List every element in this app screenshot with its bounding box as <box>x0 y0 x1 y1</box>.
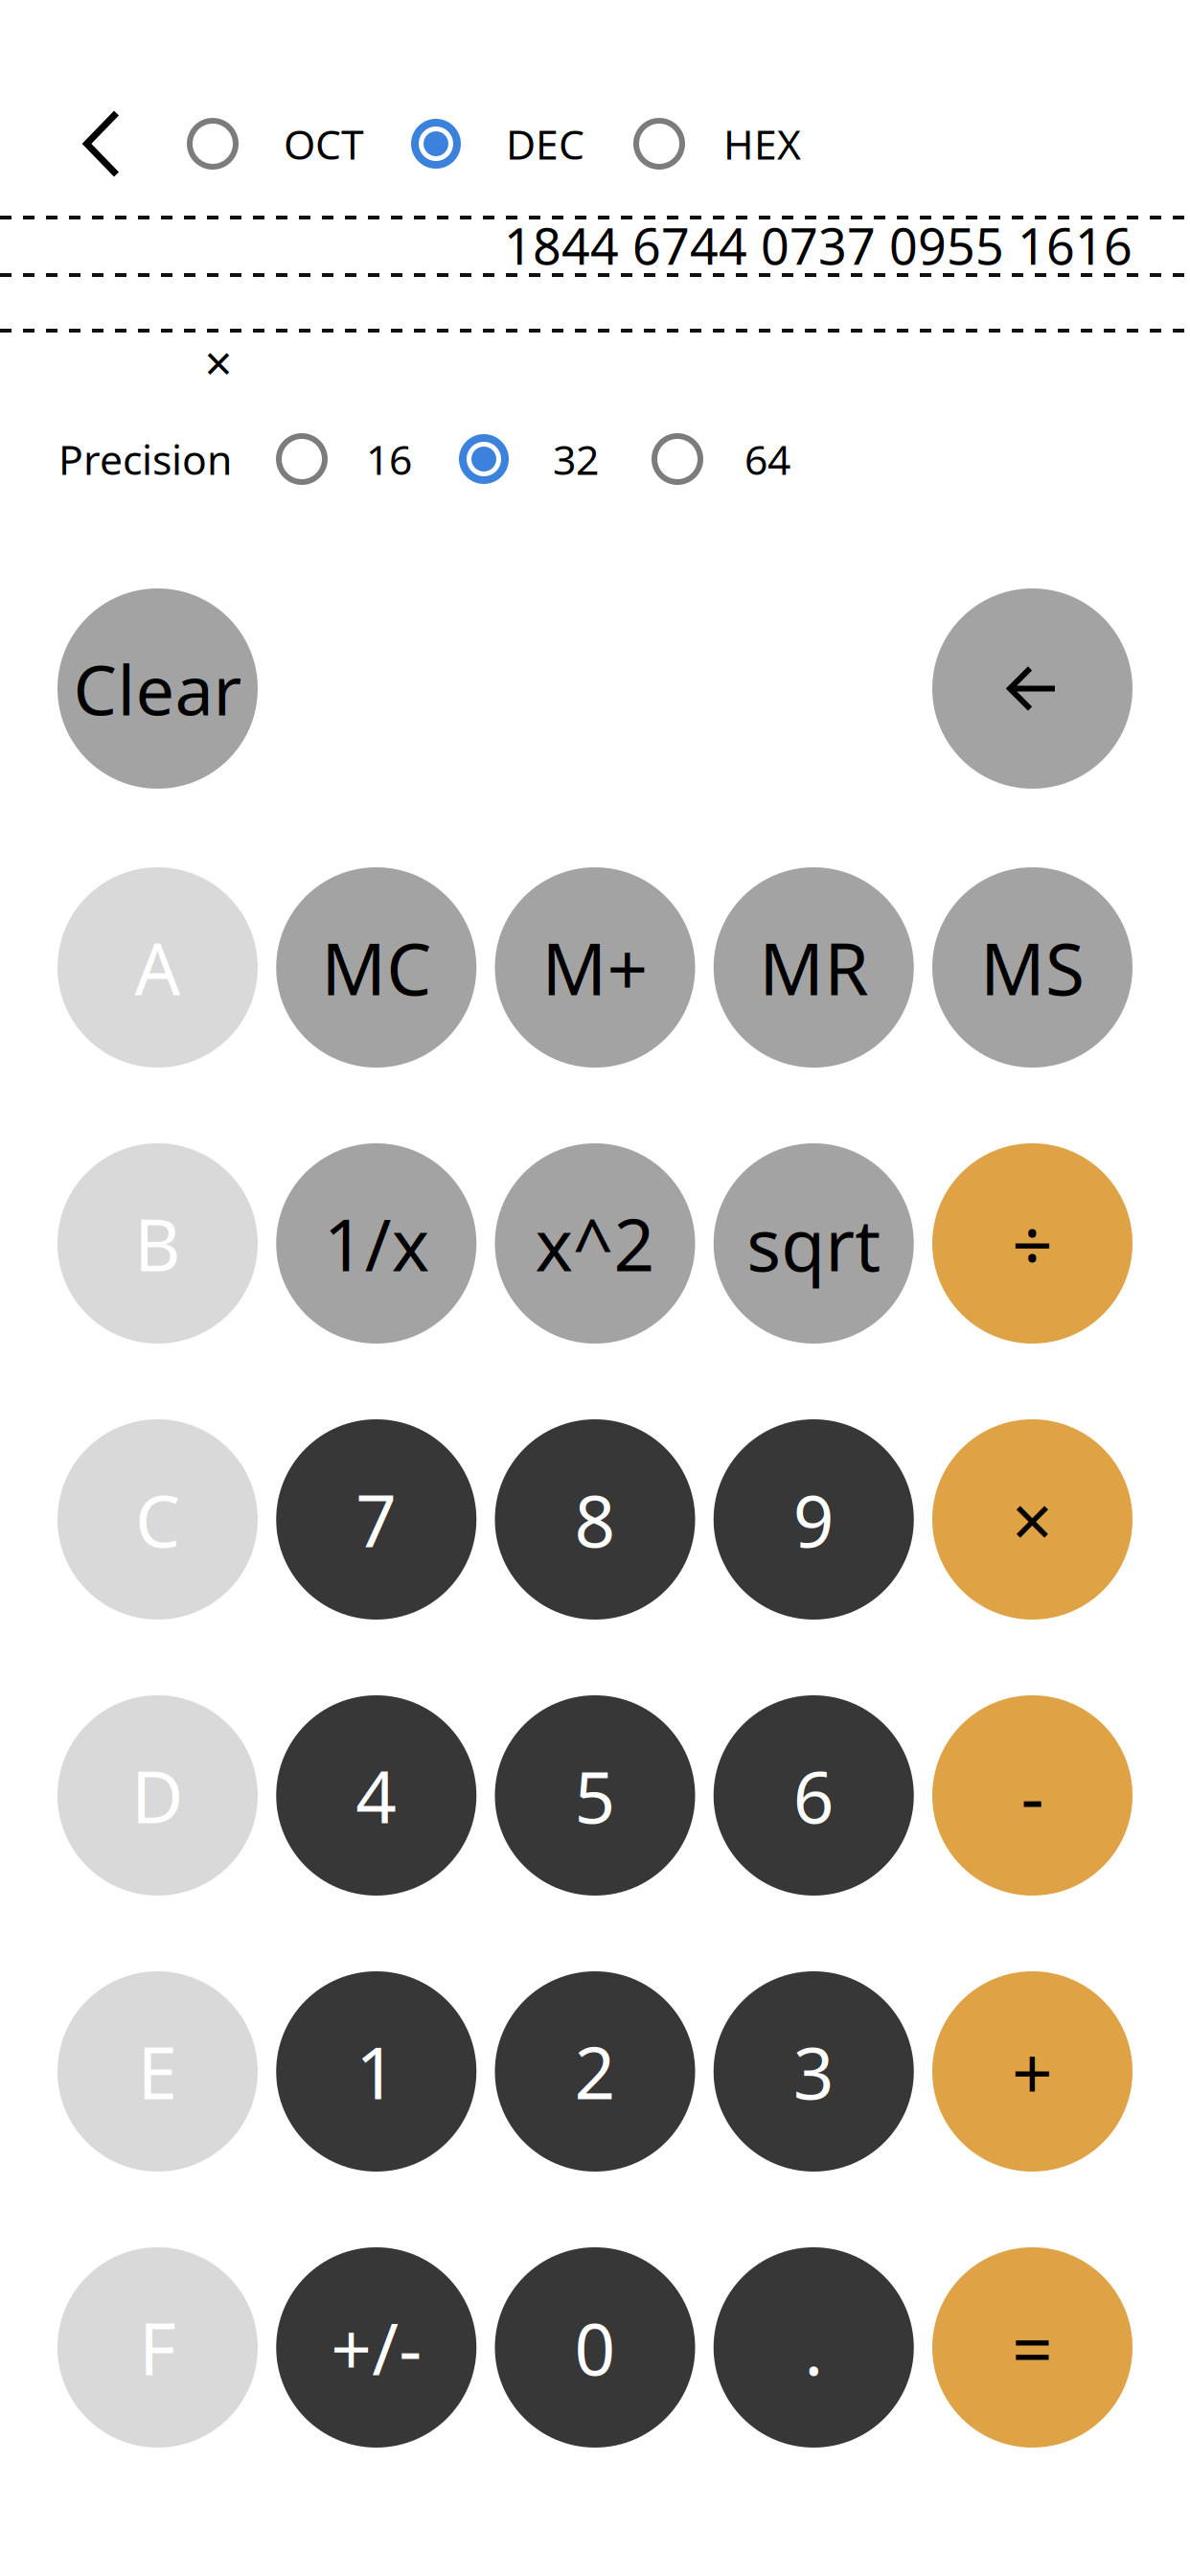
button[interactable]: = <box>932 2247 1133 2448</box>
staticText: Clear <box>73 643 242 734</box>
staticText: DEC <box>506 117 584 171</box>
staticText: . <box>804 2300 823 2395</box>
button[interactable]: D <box>57 1695 258 1896</box>
button[interactable]: 5 <box>495 1695 695 1896</box>
button[interactable]: 64 <box>652 421 798 497</box>
button[interactable]: Clear <box>57 588 258 789</box>
staticText: 0 <box>574 2300 616 2395</box>
button[interactable]: Back <box>57 100 146 188</box>
button[interactable]: 16 <box>276 421 420 497</box>
button[interactable]: OCT <box>187 105 370 182</box>
button[interactable]: . <box>714 2247 914 2448</box>
button[interactable]: DEC <box>410 105 592 182</box>
button[interactable]: 3 <box>714 1971 914 2172</box>
staticText: 7 <box>356 1472 397 1567</box>
staticText: x^2 <box>535 1196 655 1291</box>
button[interactable]: M+ <box>495 867 695 1068</box>
staticText: C <box>135 1472 180 1567</box>
button[interactable]: B <box>57 1143 258 1344</box>
staticText: 1 <box>356 2024 397 2119</box>
button[interactable]: 6 <box>714 1695 914 1896</box>
staticText: 16 <box>366 432 412 486</box>
button[interactable]: E <box>57 1971 258 2172</box>
button[interactable]: 0 <box>495 2247 695 2448</box>
button[interactable]: 8 <box>495 1419 695 1620</box>
staticText: 3 <box>793 2024 834 2119</box>
staticText: 9 <box>793 1472 834 1567</box>
button[interactable]: 4 <box>276 1695 476 1896</box>
staticText: MS <box>980 920 1085 1015</box>
button[interactable]: MR <box>714 867 914 1068</box>
button[interactable]: sqrt <box>714 1143 914 1344</box>
button[interactable]: 32 <box>458 421 606 497</box>
staticText: HEX <box>723 117 801 171</box>
button[interactable]: MS <box>932 867 1133 1068</box>
staticText: E <box>137 2024 178 2119</box>
button[interactable]: A <box>57 867 258 1068</box>
staticText: sqrt <box>747 1196 881 1291</box>
button[interactable]: C <box>57 1419 258 1620</box>
staticText: MC <box>321 920 431 1015</box>
button[interactable]: 2 <box>495 1971 695 2172</box>
button[interactable]: F <box>57 2247 258 2448</box>
button[interactable]: × <box>932 1419 1133 1620</box>
button[interactable]: MC <box>276 867 476 1068</box>
staticText: 6 <box>793 1748 834 1843</box>
staticText: - <box>1021 1748 1044 1843</box>
staticText: A <box>135 920 181 1015</box>
staticText: ÷ <box>1012 1196 1053 1291</box>
staticText: 64 <box>744 432 790 486</box>
staticText: OCT <box>284 117 364 171</box>
staticText: 1844 6744 0737 0955 1616 <box>504 212 1133 278</box>
button[interactable]: Delete <box>932 588 1133 789</box>
staticText: × <box>1012 1472 1053 1567</box>
button[interactable]: ÷ <box>932 1143 1133 1344</box>
button[interactable]: - <box>932 1695 1133 1896</box>
staticText: F <box>139 2300 176 2395</box>
staticText: × <box>205 330 232 395</box>
button[interactable]: 1 <box>276 1971 476 2172</box>
button[interactable]: + <box>932 1971 1133 2172</box>
staticText: 32 <box>553 432 599 486</box>
staticText: = <box>1012 2300 1053 2395</box>
staticText: 8 <box>574 1472 616 1567</box>
button[interactable]: x^2 <box>495 1143 695 1344</box>
button[interactable]: HEX <box>633 105 810 182</box>
button[interactable]: +/- <box>276 2247 476 2448</box>
staticText: M+ <box>542 920 648 1015</box>
button[interactable]: 1/x <box>276 1143 476 1344</box>
button[interactable]: 9 <box>714 1419 914 1620</box>
staticText: + <box>1012 2024 1053 2119</box>
staticText: 5 <box>574 1748 616 1843</box>
button[interactable]: 7 <box>276 1419 476 1620</box>
staticText: 2 <box>574 2024 616 2119</box>
staticText: B <box>134 1196 181 1291</box>
staticText: +/- <box>331 2300 422 2395</box>
staticText: Precision <box>58 432 232 486</box>
staticText: 1/x <box>324 1196 429 1291</box>
staticText: 4 <box>356 1748 397 1843</box>
staticText: D <box>131 1748 184 1843</box>
staticText: MR <box>759 920 868 1015</box>
